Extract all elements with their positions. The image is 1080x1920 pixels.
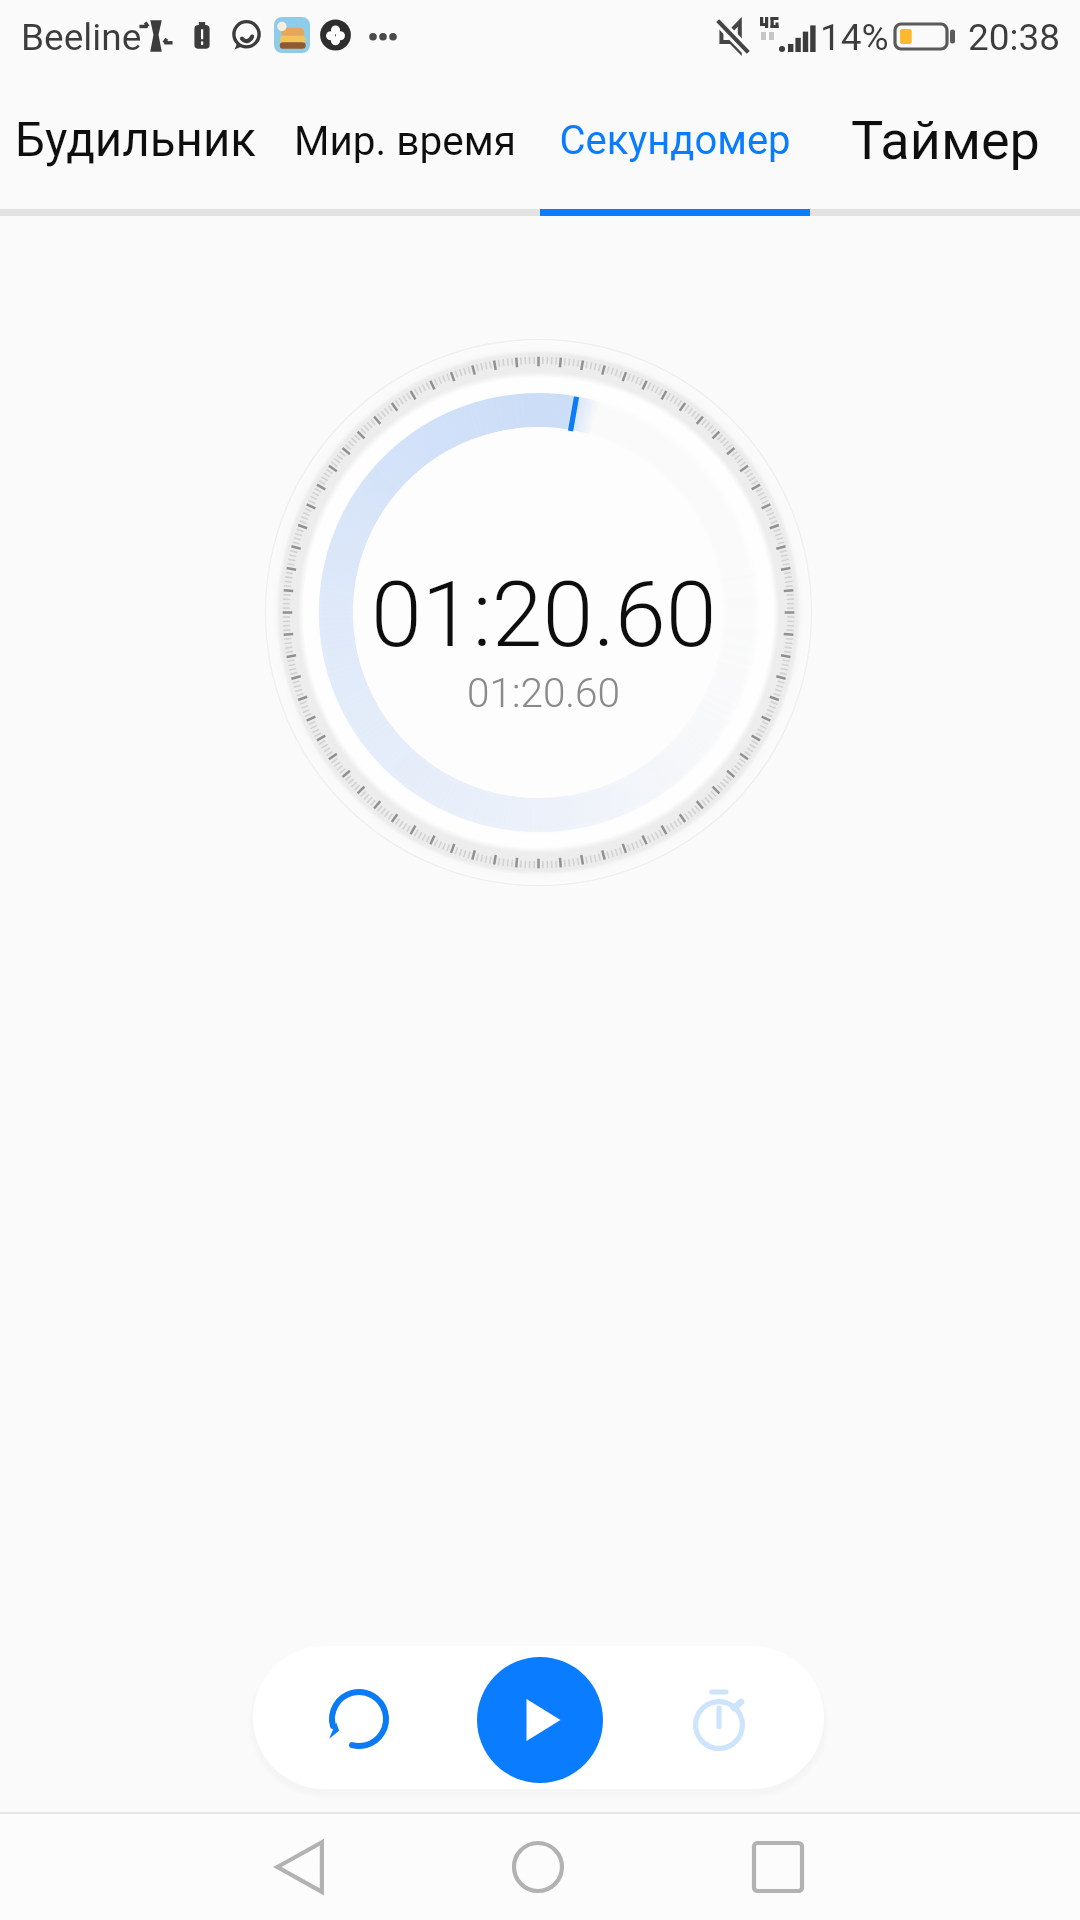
staticText: Будильник <box>15 112 256 168</box>
button[interactable]: Recents <box>688 1814 868 1920</box>
staticText: Таймер <box>851 109 1040 172</box>
button[interactable]: Back <box>210 1814 390 1920</box>
staticText: Beeline <box>21 16 142 59</box>
button[interactable]: Reset <box>289 1649 429 1789</box>
button[interactable]: Мир. время <box>270 73 540 207</box>
staticText: Секундомер <box>559 117 791 164</box>
button[interactable]: Start <box>477 1657 603 1783</box>
staticText: 14% <box>820 16 889 59</box>
button[interactable]: Home <box>448 1814 628 1920</box>
staticText: Мир. время <box>294 117 516 164</box>
staticText: 01:20.60 <box>371 561 717 668</box>
button[interactable]: Будильник <box>0 73 270 207</box>
staticText: 01:20.60 <box>467 669 620 716</box>
button[interactable]: Секундомер <box>540 73 810 207</box>
staticText: 20:38 <box>968 16 1061 59</box>
button[interactable]: Lap <box>649 1652 789 1789</box>
button[interactable]: Таймер <box>810 73 1080 207</box>
